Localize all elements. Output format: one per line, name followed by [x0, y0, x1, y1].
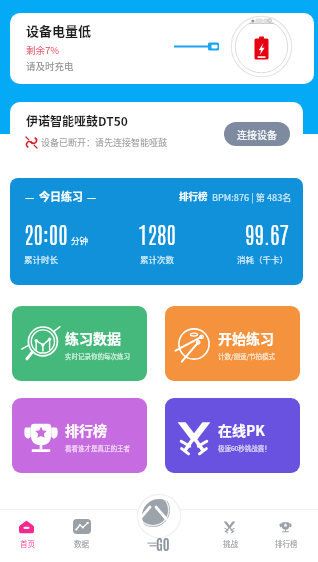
staticText: —: [87, 189, 97, 203]
staticText: 伊诺智能哑鼓DT50: [26, 112, 128, 129]
staticText: 计数/测速/节拍模式: [218, 351, 276, 360]
staticText: 设备已断开：请先连接智能哑鼓: [41, 136, 168, 149]
staticText: 开始练习: [218, 328, 274, 348]
staticText: 练习数据: [65, 328, 121, 348]
staticText: 看看谁才是真正的王者: [65, 443, 130, 452]
button[interactable]: 开始练习: [165, 306, 300, 381]
button[interactable]: GO 开始: [142, 499, 176, 533]
staticText: 1280: [138, 218, 176, 248]
staticText: 累计时长: [24, 253, 59, 265]
staticText: 连接设备: [237, 127, 277, 141]
button[interactable]: 在线PK: [165, 398, 300, 473]
staticText: 在线PK: [218, 420, 265, 440]
staticText: 分钟: [71, 234, 89, 246]
staticText: —: [25, 189, 35, 203]
staticText: 今日练习: [39, 188, 83, 204]
staticText: GO: [156, 535, 170, 553]
staticText: 99.67: [245, 218, 289, 248]
staticText: 实时记录你的每次练习: [65, 351, 130, 360]
staticText: 排行榜: [179, 189, 208, 203]
staticText: 排行榜: [65, 420, 107, 440]
staticText: 首页: [20, 538, 35, 549]
staticText: 数据: [74, 538, 89, 549]
button[interactable]: 练习数据: [12, 306, 147, 381]
button[interactable]: —: [10, 178, 303, 285]
button[interactable]: 连接设备: [224, 122, 290, 146]
button[interactable]: 排行榜: [12, 398, 147, 473]
button[interactable]: 首页: [3, 517, 51, 551]
staticText: BPM:876 | 第 483名: [212, 190, 292, 203]
staticText: 设备电量低: [26, 21, 92, 40]
staticText: 排行榜: [275, 538, 298, 549]
staticText: 挑战: [223, 538, 238, 549]
button[interactable]: 数据: [57, 517, 105, 551]
staticText: 累计次数: [140, 253, 175, 265]
staticText: 请及时充电: [26, 59, 74, 73]
button[interactable]: 挑战: [206, 517, 254, 551]
button[interactable]: 设备电量低: [10, 13, 314, 84]
button[interactable]: 排行榜: [262, 517, 310, 551]
staticText: 20:00: [24, 218, 68, 248]
staticText: 极速60秒挑战赛！: [218, 443, 271, 452]
button[interactable]: 伊诺智能哑鼓DT50: [10, 102, 303, 166]
staticText: 剩余7%: [26, 43, 60, 57]
staticText: 消耗（千卡）: [237, 253, 289, 265]
